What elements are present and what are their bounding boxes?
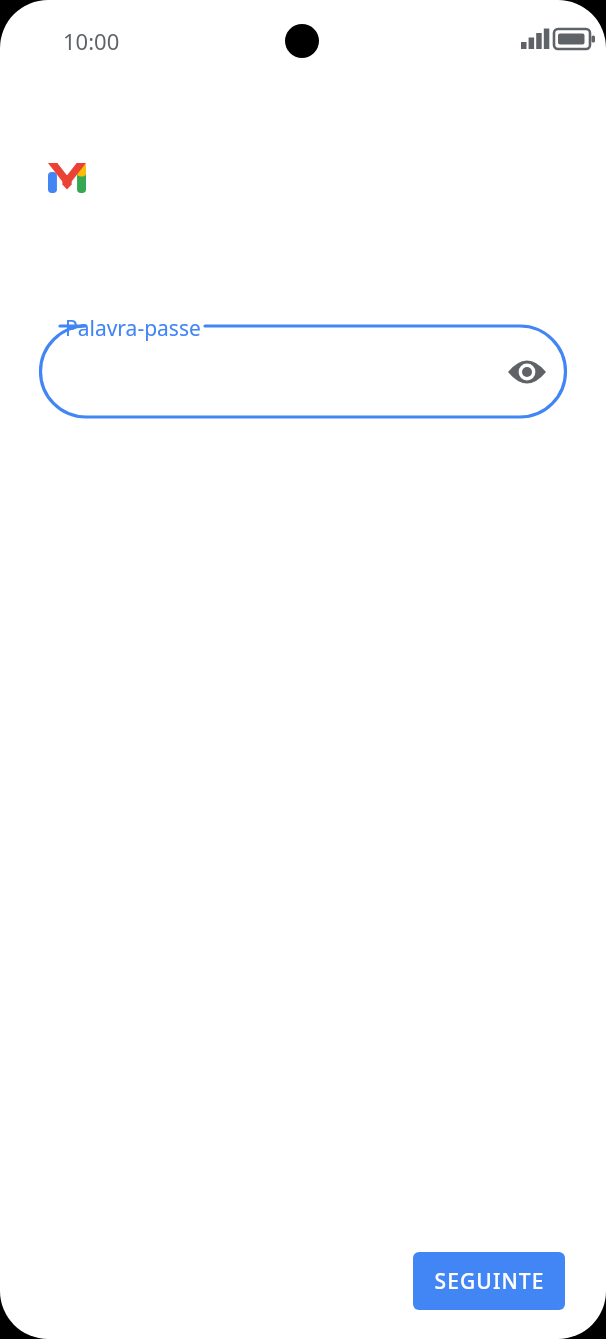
staticText: 10:00: [63, 26, 120, 56]
staticText: SEGUINTE: [434, 1267, 545, 1296]
button[interactable]: Mostrar palavra-passe: [503, 348, 551, 396]
button[interactable]: SEGUINTE: [413, 1252, 565, 1310]
staticText: Palavra-passe: [65, 314, 201, 343]
button[interactable]: [40, 326, 566, 417]
